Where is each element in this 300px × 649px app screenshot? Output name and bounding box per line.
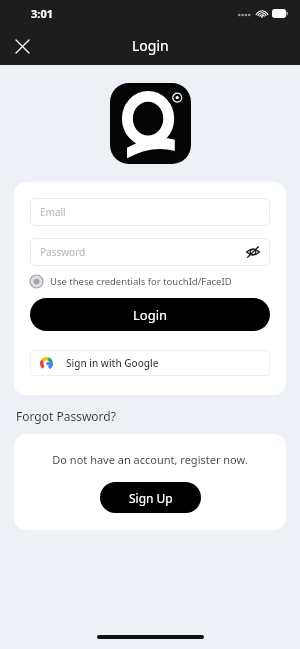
- staticText: Sign in with Google: [66, 356, 159, 370]
- button[interactable]: Close: [8, 32, 36, 60]
- button[interactable]: Show password: [244, 243, 262, 261]
- staticText: Login: [133, 306, 168, 324]
- button[interactable]: Forgot Password?: [16, 408, 116, 424]
- staticText: Password: [40, 245, 86, 259]
- staticText: Login: [132, 36, 169, 55]
- staticText: Email: [40, 205, 66, 219]
- button[interactable]: Email: [30, 198, 270, 226]
- staticText: Do not have an account, register now.: [52, 452, 248, 467]
- button[interactable]: Sign Up: [100, 482, 201, 513]
- button[interactable]: Sign in with Google: [30, 350, 270, 376]
- staticText: 3:01: [31, 6, 53, 21]
- button[interactable]: Login: [30, 298, 270, 331]
- button[interactable]: Use these credentials for touchId/FaceID: [30, 275, 270, 288]
- staticText: Sign Up: [129, 490, 173, 506]
- button[interactable]: Password: [30, 238, 270, 266]
- staticText: Use these credentials for touchId/FaceID: [50, 275, 232, 288]
